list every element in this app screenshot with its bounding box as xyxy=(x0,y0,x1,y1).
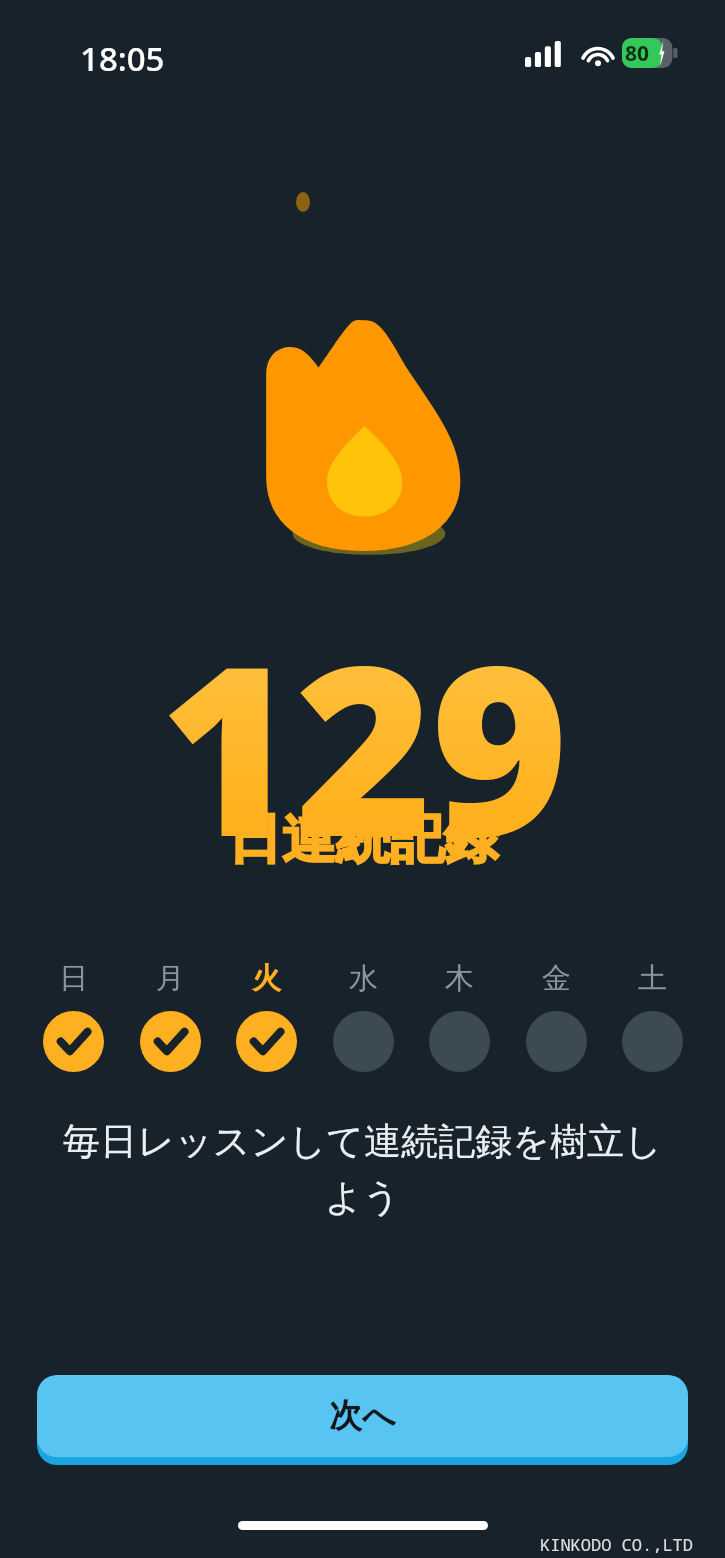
staticText: 129 xyxy=(159,585,567,905)
button[interactable]: 水 xyxy=(332,960,394,1072)
staticText: 18:05 xyxy=(80,36,165,81)
staticText: 土 xyxy=(638,960,667,997)
staticText: 日連続記録 xyxy=(228,805,498,873)
staticText: 月 xyxy=(156,960,185,997)
staticText: 金 xyxy=(542,960,571,997)
staticText: 日 xyxy=(59,960,88,997)
button[interactable]: 木 xyxy=(428,960,490,1072)
button[interactable]: 土 xyxy=(621,960,683,1072)
button[interactable]: 月 xyxy=(139,960,201,1072)
button[interactable]: 次へ xyxy=(37,1375,688,1465)
staticText: 木 xyxy=(445,960,474,997)
button[interactable]: 金 xyxy=(525,960,587,1072)
button[interactable]: 火 xyxy=(235,960,297,1072)
staticText: 火 xyxy=(252,960,281,997)
button[interactable]: 日 xyxy=(42,960,104,1072)
staticText: KINKODO CO.,LTD xyxy=(540,1533,693,1556)
staticText: 水 xyxy=(349,960,378,997)
staticText: 次へ xyxy=(329,1395,396,1437)
staticText: 毎日レッスンして連続記録を樹立しよう xyxy=(62,1118,663,1221)
staticText: 80 xyxy=(625,39,650,68)
